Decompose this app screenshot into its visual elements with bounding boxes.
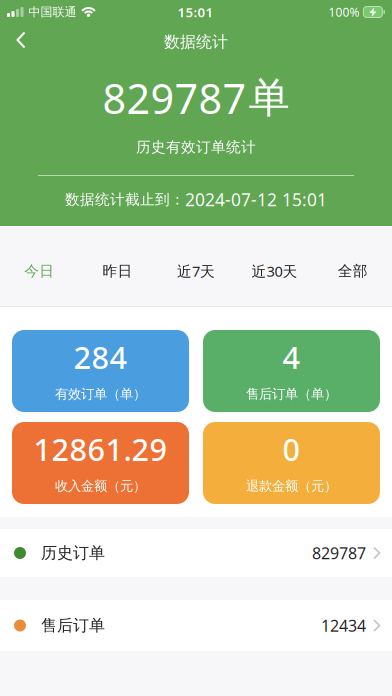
staticText: 售后订单: [41, 616, 105, 635]
staticText: 历史订单: [41, 543, 105, 563]
staticText: 数据统计: [164, 32, 228, 52]
staticText: 100%: [328, 4, 359, 20]
staticText: 12861.29: [33, 429, 167, 469]
staticText: 12434: [321, 615, 366, 636]
button[interactable]: 历史订单: [0, 529, 392, 577]
staticText: 历史有效订单统计: [136, 138, 256, 156]
button[interactable]: 昨日: [78, 226, 157, 306]
staticText: 近30天: [251, 261, 297, 281]
button[interactable]: 近30天: [235, 226, 314, 306]
staticText: 中国联通: [28, 5, 76, 19]
button[interactable]: Back: [0, 24, 38, 56]
staticText: 售后订单（单）: [246, 386, 337, 402]
staticText: 2024-07-12 15:01: [185, 188, 327, 211]
staticText: 昨日: [103, 262, 133, 280]
staticText: 0: [282, 429, 300, 469]
staticText: 284: [73, 337, 127, 377]
button[interactable]: 全部: [314, 226, 392, 306]
staticText: 15:01: [177, 3, 213, 21]
staticText: 近7天: [177, 261, 215, 281]
staticText: 数据统计截止到：: [65, 190, 185, 208]
staticText: 收入金额（元）: [55, 478, 146, 494]
staticText: 829787: [312, 542, 366, 564]
button[interactable]: 近7天: [157, 226, 235, 306]
button[interactable]: 售后订单: [0, 600, 392, 651]
staticText: 829787: [102, 71, 246, 125]
button[interactable]: 今日: [0, 226, 78, 306]
staticText: 全部: [338, 262, 368, 280]
staticText: 有效订单（单）: [55, 386, 146, 402]
staticText: 单: [248, 73, 289, 123]
staticText: 今日: [24, 262, 54, 280]
staticText: 4: [282, 337, 300, 377]
staticText: 退款金额（元）: [246, 478, 337, 494]
